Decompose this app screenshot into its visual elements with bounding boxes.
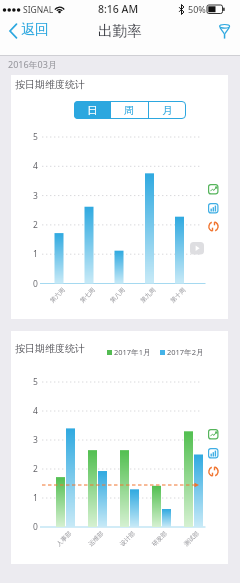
button[interactable]: 周 <box>111 101 148 119</box>
staticText: 出勤率 <box>98 22 142 40</box>
button[interactable] <box>208 466 219 477</box>
staticText: 2016年03月 <box>8 58 57 70</box>
button[interactable] <box>208 429 219 440</box>
button[interactable] <box>208 184 219 195</box>
button[interactable] <box>215 21 234 42</box>
button[interactable] <box>208 448 219 459</box>
staticText: SIGNAL <box>23 4 54 16</box>
staticText: 8:16 AM <box>98 2 139 16</box>
button[interactable]: 日 <box>74 101 110 119</box>
button[interactable] <box>190 242 204 255</box>
staticText: 50% <box>188 3 206 15</box>
staticText: 月 <box>162 104 173 117</box>
staticText: 2017年1月 <box>114 347 151 357</box>
button[interactable] <box>208 221 219 232</box>
staticText: 周 <box>124 104 135 117</box>
staticText: 返回 <box>21 21 49 39</box>
staticText: 按日期维度统计 <box>15 78 85 91</box>
button[interactable] <box>208 203 219 214</box>
staticText: 按日期维度统计 <box>15 342 85 355</box>
staticText: 日 <box>87 104 98 117</box>
button[interactable]: 返回 <box>6 21 51 43</box>
button[interactable]: 月 <box>149 101 186 119</box>
staticText: 2017年2月 <box>167 347 204 357</box>
